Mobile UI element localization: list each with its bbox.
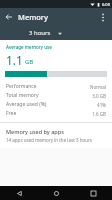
button[interactable]: Memory used by apps — [0, 123, 112, 148]
staticText: 1.1 — [6, 52, 23, 68]
staticText: 3 hours — [29, 29, 51, 37]
button[interactable]: Average used (%) — [0, 100, 112, 109]
staticText: Memory used by apps — [6, 128, 64, 135]
button[interactable]: Recent apps — [75, 186, 112, 200]
button[interactable]: More options — [94, 8, 112, 26]
button[interactable]: Total memory — [0, 91, 112, 100]
staticText: 6:00 — [102, 2, 110, 7]
staticText: Total memory — [6, 92, 39, 99]
button[interactable]: Home — [38, 186, 75, 200]
button[interactable]: Free — [0, 109, 112, 118]
staticText: GB — [25, 58, 34, 66]
staticText: Memory — [18, 12, 49, 22]
staticText: Performance — [6, 83, 37, 90]
staticText: Average used (%) — [6, 101, 47, 108]
staticText: 1.6 GB — [92, 111, 106, 117]
staticText: 14 apps used memory in the last 3 hours — [6, 137, 93, 143]
staticText: 3.0 GB — [92, 93, 106, 99]
staticText: Free — [6, 110, 17, 117]
button[interactable]: Performance — [0, 82, 112, 91]
button[interactable]: Back — [0, 186, 38, 200]
staticText: Average memory use — [6, 44, 52, 50]
staticText: Normal — [90, 84, 106, 90]
button[interactable]: 3 hours — [29, 29, 66, 37]
button[interactable]: Back — [0, 8, 18, 26]
staticText: 41% — [97, 102, 106, 108]
